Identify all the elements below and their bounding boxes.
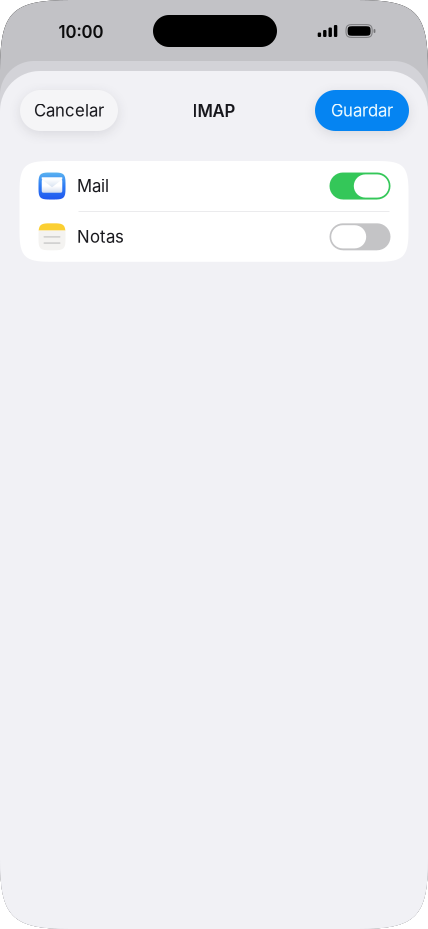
staticText: Mail [77,176,109,196]
staticText: 10:00 [58,22,103,42]
staticText: Cancelar [34,100,104,121]
staticText: Guardar [331,100,393,121]
button[interactable]: Guardar [315,90,409,131]
staticText: IMAP [192,101,235,121]
button[interactable]: Notas [19,212,408,262]
button[interactable]: Mail [19,161,408,211]
staticText: Notas [77,227,124,247]
button[interactable]: Cancelar [20,90,118,131]
